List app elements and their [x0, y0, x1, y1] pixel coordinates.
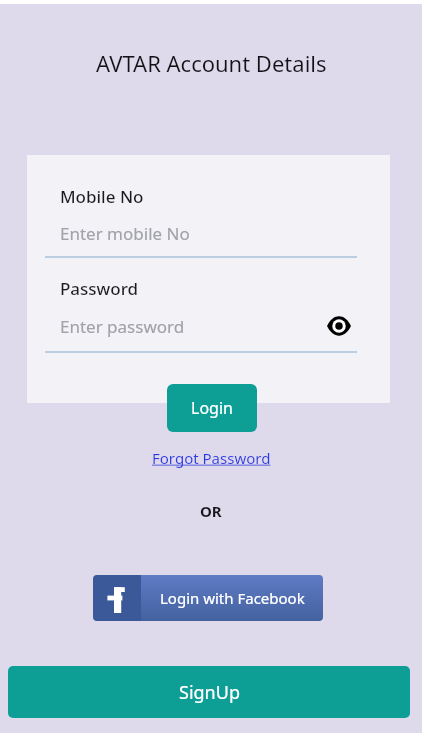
- button[interactable]: SignUp: [8, 666, 410, 718]
- staticText: Password: [60, 277, 139, 300]
- staticText: Mobile No: [60, 185, 144, 208]
- staticText: Enter password: [60, 315, 321, 338]
- staticText: OR: [200, 501, 222, 521]
- button[interactable]: Login: [167, 384, 257, 432]
- staticText: SignUp: [179, 680, 240, 705]
- staticText: AVTAR Account Details: [96, 48, 327, 78]
- button[interactable]: Login with Facebook: [93, 575, 323, 621]
- button[interactable]: Show password: [321, 308, 357, 344]
- staticText: Enter mobile No: [60, 222, 190, 245]
- staticText: Forgot Password: [152, 448, 271, 468]
- button[interactable]: Forgot Password: [146, 444, 277, 472]
- staticText: Login: [191, 397, 233, 419]
- staticText: Login with Facebook: [160, 588, 305, 608]
